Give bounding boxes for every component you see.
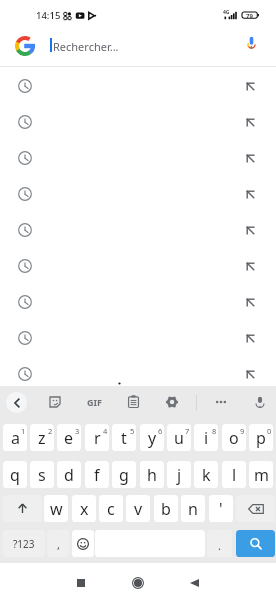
button[interactable]: Back [182, 571, 206, 595]
button[interactable]: f [85, 461, 109, 488]
staticText: j [177, 464, 182, 486]
staticText: h [147, 464, 157, 486]
button[interactable]: GIF [85, 394, 103, 409]
staticText: ?123 [13, 537, 35, 551]
button[interactable]: z [30, 424, 54, 451]
button[interactable] [0, 104, 276, 140]
staticText: 9 [240, 426, 245, 436]
button[interactable]: Emoji [72, 530, 94, 557]
button[interactable]: ?123 [3, 530, 45, 557]
button[interactable] [0, 356, 276, 392]
staticText: r [94, 427, 101, 449]
staticText: Rechercher... [53, 39, 119, 54]
staticText: n [188, 498, 198, 520]
button[interactable]: Stickers [47, 394, 62, 409]
staticText: a [11, 427, 20, 449]
staticText: i [204, 427, 209, 449]
staticText: GIF [87, 396, 102, 408]
staticText: , [57, 537, 60, 552]
button[interactable]: l [222, 461, 246, 488]
button[interactable]: g [112, 461, 136, 488]
staticText: s [38, 464, 46, 486]
button[interactable]: , [47, 530, 69, 557]
button[interactable] [0, 248, 276, 284]
staticText: 2 [48, 426, 53, 436]
button[interactable]: u [167, 424, 191, 451]
staticText: 4 [103, 426, 108, 436]
staticText: x [80, 498, 89, 520]
staticText: p [256, 427, 266, 449]
button[interactable]: i [194, 424, 218, 451]
staticText: . [218, 538, 221, 553]
button[interactable]: h [140, 461, 164, 488]
button[interactable]: e [57, 424, 81, 451]
staticText: g [119, 464, 129, 486]
button[interactable]: m [249, 461, 273, 488]
button[interactable]: Home [126, 571, 150, 595]
staticText: y [148, 427, 157, 449]
button[interactable]: p [249, 424, 273, 451]
button[interactable]: Voice input [252, 394, 267, 409]
staticText: 8 [212, 426, 217, 436]
button[interactable] [0, 284, 276, 320]
button[interactable]: x [72, 495, 96, 522]
button[interactable]: r [85, 424, 109, 451]
button[interactable]: Clipboard [126, 394, 141, 409]
button[interactable]: Search [236, 530, 275, 557]
staticText: u [174, 427, 184, 449]
button[interactable]: y [140, 424, 164, 451]
staticText: 0 [267, 426, 272, 436]
staticText: 14:15 [36, 9, 61, 22]
staticText: v [134, 498, 143, 520]
staticText: d [64, 464, 74, 486]
button[interactable]: Voice search [239, 30, 263, 54]
staticText: 5 [130, 426, 135, 436]
button[interactable]: ' [209, 495, 233, 522]
button[interactable] [0, 140, 276, 176]
button[interactable]: a [3, 424, 27, 451]
staticText: o [229, 427, 239, 449]
button[interactable]: w [44, 495, 68, 522]
button[interactable]: j [167, 461, 191, 488]
staticText: 1 [21, 426, 26, 436]
button[interactable]: k [194, 461, 218, 488]
button[interactable] [0, 68, 276, 104]
button[interactable]: Backspace [236, 495, 275, 522]
button[interactable]: Settings [164, 394, 179, 409]
staticText: m [254, 464, 269, 486]
button[interactable]: n [181, 495, 205, 522]
button[interactable]: q [3, 461, 27, 488]
button[interactable]: o [222, 424, 246, 451]
button[interactable]: Recents [69, 571, 93, 595]
staticText: e [64, 427, 74, 449]
button[interactable]: c [99, 495, 123, 522]
staticText: f [94, 464, 100, 486]
staticText: z [38, 427, 46, 449]
button[interactable]: t [112, 424, 136, 451]
staticText: t [121, 427, 127, 449]
button[interactable]: s [30, 461, 54, 488]
button[interactable] [0, 212, 276, 248]
staticText: w [50, 498, 63, 520]
button[interactable]: b [154, 495, 178, 522]
button[interactable]: Back [6, 392, 27, 413]
staticText: ' [219, 498, 223, 520]
button[interactable]: Shift [3, 495, 42, 522]
staticText: 7 [185, 426, 190, 436]
staticText: 79 [246, 12, 253, 20]
staticText: 6 [158, 426, 163, 436]
staticText: 3 [75, 426, 80, 436]
staticText: b [161, 498, 171, 520]
staticText: l [232, 464, 237, 486]
button[interactable]: d [57, 461, 81, 488]
button[interactable]: v [126, 495, 150, 522]
staticText: q [10, 464, 20, 486]
button[interactable]: More options [213, 394, 228, 409]
staticText: c [107, 498, 115, 520]
button[interactable] [0, 176, 276, 212]
button[interactable]: . [207, 530, 232, 557]
staticText: k [202, 464, 211, 486]
staticText: 4G [223, 9, 230, 16]
button[interactable] [0, 320, 276, 356]
